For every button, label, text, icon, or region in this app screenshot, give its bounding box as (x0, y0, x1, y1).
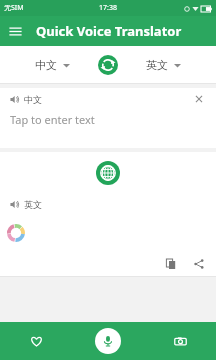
button[interactable]: Clear text (190, 90, 208, 108)
button[interactable]: 英文 (10, 199, 42, 210)
button[interactable]: Camera (166, 327, 194, 355)
button[interactable]: Share (190, 255, 208, 273)
button[interactable]: Menu (0, 16, 30, 46)
staticText: Tap to enter text (10, 112, 95, 127)
staticText: 英文 (24, 199, 42, 210)
button[interactable]: 中文 (10, 94, 42, 105)
button[interactable]: Tap to enter text (0, 110, 216, 148)
button[interactable]: 英文 (142, 55, 185, 75)
staticText: 英文 (146, 58, 168, 72)
button[interactable]: Copy (162, 255, 180, 273)
staticText: 17:38 (99, 3, 117, 13)
button[interactable]: Voice input (95, 328, 121, 354)
button[interactable]: Favorites (22, 327, 50, 355)
staticText: 中文 (24, 94, 42, 105)
button[interactable]: Translate (93, 158, 123, 188)
staticText: Quick Voice Translator (36, 22, 182, 40)
staticText: 中文 (35, 58, 57, 72)
button[interactable]: 中文 (31, 55, 74, 75)
button[interactable]: Swap languages (95, 52, 121, 78)
staticText: 无SIM (4, 3, 24, 13)
